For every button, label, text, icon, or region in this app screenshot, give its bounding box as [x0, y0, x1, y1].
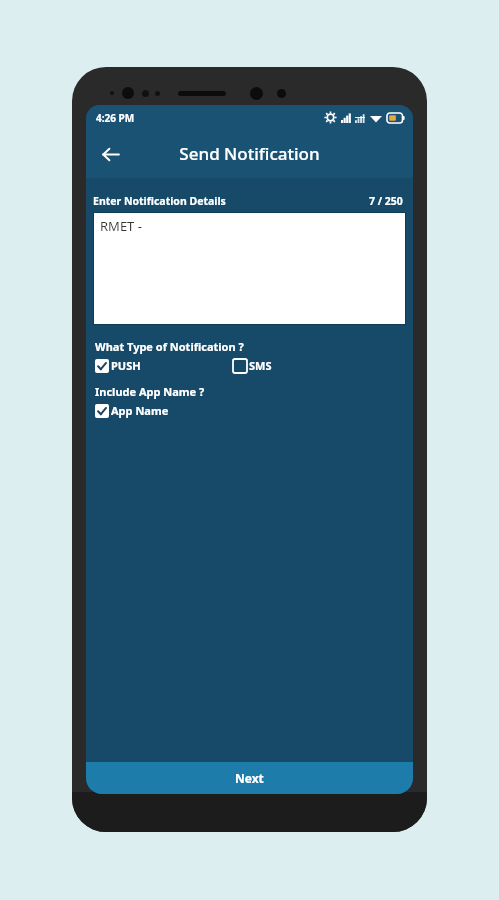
button[interactable]: App Name: [93, 402, 171, 419]
staticText: SMS: [249, 358, 272, 373]
button[interactable]: RMET -: [93, 212, 406, 325]
staticText: Enter Notification Details: [93, 194, 226, 208]
staticText: PUSH: [111, 358, 141, 373]
staticText: What Type of Notification ?: [95, 339, 244, 354]
button[interactable]: SMS: [231, 357, 274, 374]
staticText: 7 / 250: [369, 194, 403, 208]
button[interactable]: PUSH: [93, 357, 143, 374]
staticText: Next: [235, 770, 264, 786]
staticText: Include App Name ?: [95, 384, 205, 399]
staticText: App Name: [111, 403, 169, 418]
staticText: RMET -: [100, 217, 142, 235]
staticText: Send Notification: [179, 142, 320, 165]
staticText: 4:26 PM: [96, 111, 135, 125]
button[interactable]: Back: [92, 136, 128, 172]
button[interactable]: Next: [86, 762, 413, 794]
